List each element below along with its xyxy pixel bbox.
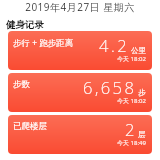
staticText: 2019年4月27日 星期六 — [0, 0, 160, 14]
staticText: 步行 + 跑步距离 — [13, 37, 74, 49]
staticText: 2 — [125, 118, 137, 140]
staticText: 健身记录 — [6, 19, 44, 31]
button[interactable]: 已爬楼层 — [8, 115, 152, 154]
staticText: 步数 — [13, 79, 30, 90]
staticText: 今天 18:02 — [117, 55, 146, 63]
staticText: 层 — [138, 130, 146, 139]
staticText: 今天 18:02 — [117, 97, 146, 105]
staticText: 6,658 — [83, 76, 137, 98]
staticText: 步 — [138, 88, 146, 97]
staticText: 已爬楼层 — [13, 121, 47, 132]
staticText: 公里 — [131, 46, 146, 55]
staticText: 今天 18:49 — [117, 139, 146, 147]
button[interactable]: 步行 + 跑步距离 — [8, 31, 152, 70]
staticText: 4.2 — [99, 34, 130, 56]
button[interactable]: 步数 — [8, 73, 152, 112]
